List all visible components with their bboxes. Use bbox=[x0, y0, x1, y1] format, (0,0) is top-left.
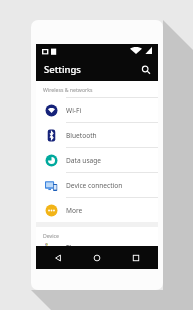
staticText: Device bbox=[43, 232, 59, 239]
staticText: Settings bbox=[44, 63, 81, 76]
staticText: Data usage bbox=[66, 156, 102, 165]
staticText: More bbox=[66, 206, 83, 215]
button[interactable]: Wi-Fi bbox=[36, 98, 158, 122]
button[interactable]: Home bbox=[88, 249, 106, 267]
button[interactable]: More bbox=[36, 198, 158, 222]
button[interactable]: Recent apps bbox=[127, 249, 145, 267]
button[interactable]: Search bbox=[137, 61, 154, 78]
staticText: Themes bbox=[66, 243, 91, 246]
button[interactable]: Data usage bbox=[36, 148, 158, 172]
staticText: Device connection bbox=[66, 181, 123, 190]
button[interactable]: Device connection bbox=[36, 173, 158, 197]
button[interactable]: Bluetooth bbox=[36, 123, 158, 147]
staticText: Bluetooth bbox=[66, 131, 97, 140]
staticText: Wi-Fi bbox=[66, 106, 82, 115]
button[interactable]: Back bbox=[49, 249, 67, 267]
button[interactable]: Themes bbox=[36, 243, 158, 246]
staticText: Wireless & networks bbox=[43, 86, 93, 93]
